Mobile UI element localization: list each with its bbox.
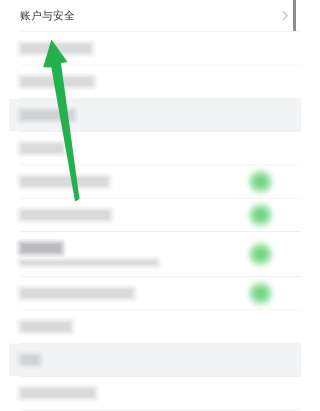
- button[interactable]: [0, 310, 301, 343]
- button[interactable]: [0, 165, 301, 198]
- button[interactable]: [0, 199, 301, 231]
- button[interactable]: [0, 232, 301, 276]
- button[interactable]: [0, 32, 301, 65]
- button[interactable]: [0, 132, 301, 165]
- button[interactable]: [0, 65, 301, 98]
- button[interactable]: 账户与安全: [0, 0, 301, 31]
- staticText: 账户与安全: [20, 9, 75, 22]
- button[interactable]: [0, 277, 301, 310]
- button[interactable]: [0, 344, 301, 376]
- button[interactable]: [0, 99, 301, 131]
- button[interactable]: [0, 377, 301, 409]
